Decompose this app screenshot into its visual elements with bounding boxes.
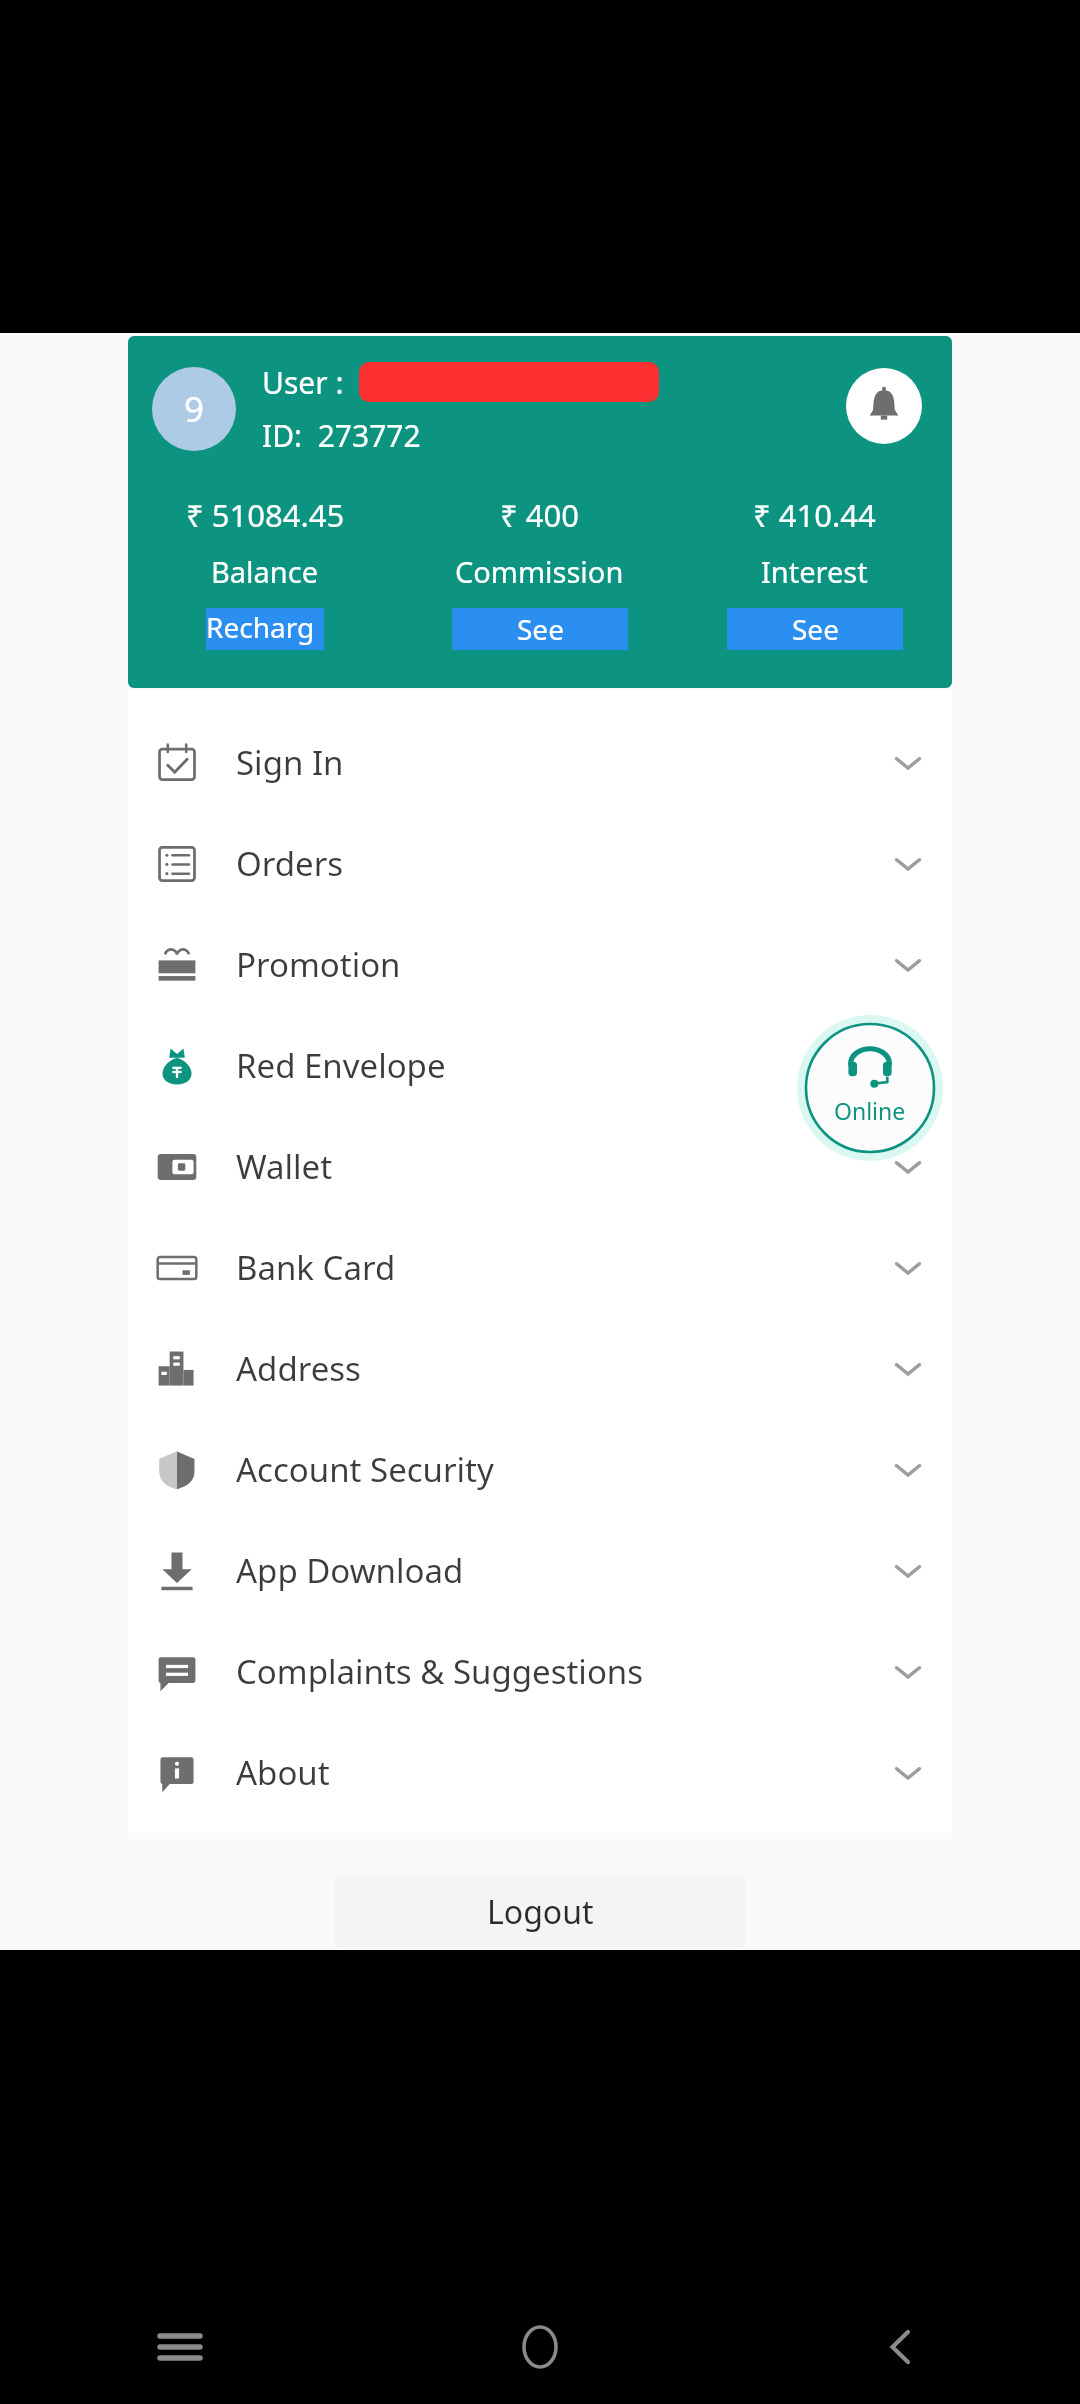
- button[interactable]: Online support: [797, 1015, 943, 1161]
- staticText: Online: [834, 1095, 906, 1126]
- button[interactable]: Wallet: [128, 1116, 952, 1217]
- staticText: About: [236, 1750, 330, 1795]
- staticText: Wallet: [236, 1144, 333, 1189]
- button[interactable]: Address: [128, 1318, 952, 1419]
- button[interactable]: Promotion: [128, 914, 952, 1015]
- button[interactable]: Bank Card: [128, 1217, 952, 1318]
- button[interactable]: See: [452, 608, 628, 650]
- button[interactable]: Recent apps: [130, 2297, 230, 2397]
- button[interactable]: See: [727, 608, 903, 650]
- staticText: Logout: [487, 1890, 594, 1934]
- staticText: Sign In: [236, 740, 344, 785]
- staticText: ₹ 400: [500, 494, 579, 536]
- staticText: ₹ 410.44: [753, 494, 876, 536]
- button[interactable]: Notifications: [846, 368, 922, 444]
- staticText: Orders: [236, 841, 344, 886]
- staticText: See: [517, 610, 564, 648]
- button[interactable]: Sign In: [128, 712, 952, 813]
- button[interactable]: Complaints & Suggestions: [128, 1621, 952, 1722]
- staticText: Account Security: [236, 1447, 494, 1492]
- staticText: Promotion: [236, 942, 401, 987]
- staticText: Commission: [455, 552, 624, 591]
- button[interactable]: Back: [850, 2297, 950, 2397]
- staticText: User :: [262, 362, 344, 403]
- staticText: App Download: [236, 1548, 464, 1593]
- staticText: Red Envelope: [236, 1043, 446, 1088]
- button[interactable]: About: [128, 1722, 952, 1823]
- staticText: Recharge: [206, 608, 324, 650]
- button[interactable]: Orders: [128, 813, 952, 914]
- staticText: Complaints & Suggestions: [236, 1649, 644, 1694]
- staticText: ID: 273772: [262, 415, 421, 456]
- button[interactable]: Logout: [335, 1875, 745, 1949]
- button[interactable]: App Download: [128, 1520, 952, 1621]
- staticText: Balance: [211, 552, 319, 591]
- button[interactable]: Account Security: [128, 1419, 952, 1520]
- staticText: Interest: [761, 552, 868, 591]
- staticText: ₹ 51084.45: [186, 494, 345, 536]
- button[interactable]: Home: [490, 2297, 590, 2397]
- button[interactable]: 9: [152, 367, 236, 451]
- staticText: 9: [184, 385, 205, 433]
- staticText: See: [792, 610, 839, 648]
- staticText: Address: [236, 1346, 361, 1391]
- staticText: Bank Card: [236, 1245, 396, 1290]
- button[interactable]: Recharge: [206, 608, 324, 650]
- button[interactable]: Red Envelope: [128, 1015, 952, 1116]
